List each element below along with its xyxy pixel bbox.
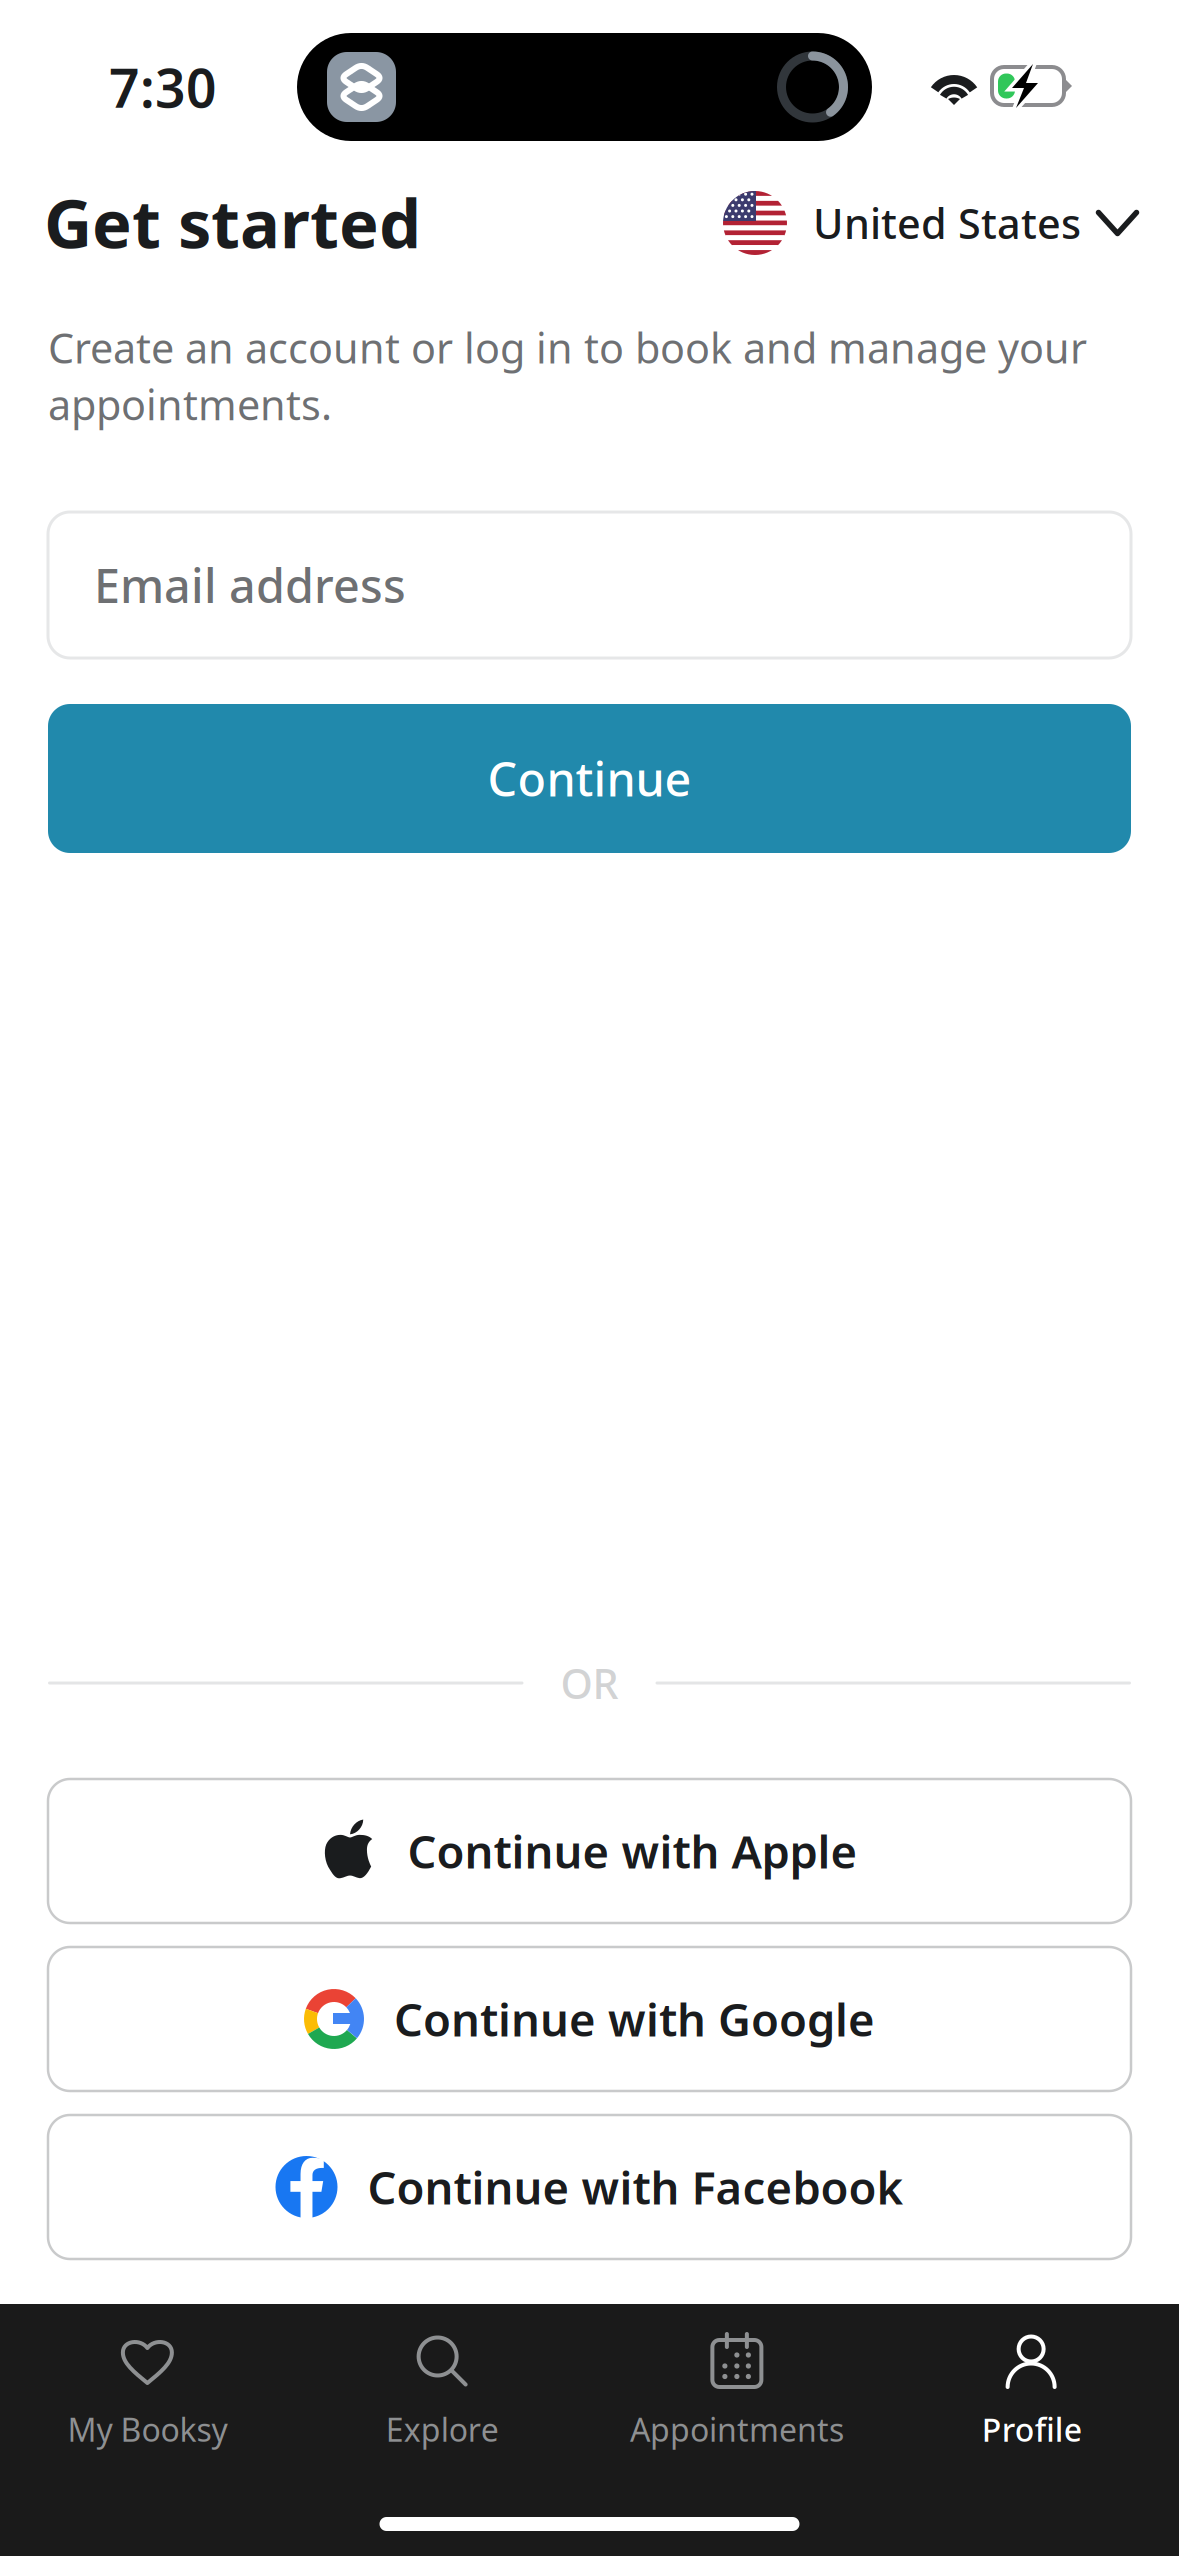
staticText: Continue with Facebook bbox=[367, 2157, 903, 2217]
button[interactable]: United States bbox=[723, 190, 1139, 256]
staticText: Explore bbox=[386, 2408, 499, 2450]
staticText: Continue with Apple bbox=[407, 1821, 857, 1881]
button[interactable]: Continue with Apple bbox=[48, 1779, 1131, 1923]
staticText: United States bbox=[813, 196, 1081, 250]
staticText: OR bbox=[560, 1656, 618, 1710]
staticText: Get started bbox=[44, 178, 421, 266]
staticText: 7:30 bbox=[109, 52, 217, 122]
button[interactable]: Profile bbox=[884, 2336, 1179, 2450]
staticText: Continue bbox=[487, 747, 691, 809]
staticText: Continue with Google bbox=[394, 1989, 875, 2049]
button[interactable]: Explore bbox=[295, 2336, 590, 2450]
button[interactable]: Continue bbox=[48, 704, 1131, 853]
button[interactable]: My Booksy bbox=[0, 2336, 295, 2450]
staticText: My Booksy bbox=[67, 2408, 227, 2450]
button[interactable]: Continue with Facebook bbox=[48, 2115, 1131, 2259]
button[interactable]: Appointments bbox=[589, 2336, 884, 2450]
staticText: Create an account or log in to book and … bbox=[48, 320, 1087, 432]
staticText: Appointments bbox=[630, 2408, 844, 2450]
staticText: Profile bbox=[982, 2408, 1082, 2450]
button[interactable]: Continue with Google bbox=[48, 1947, 1131, 2091]
button[interactable]: Email address bbox=[48, 512, 1131, 658]
staticText: Email address bbox=[94, 554, 406, 616]
